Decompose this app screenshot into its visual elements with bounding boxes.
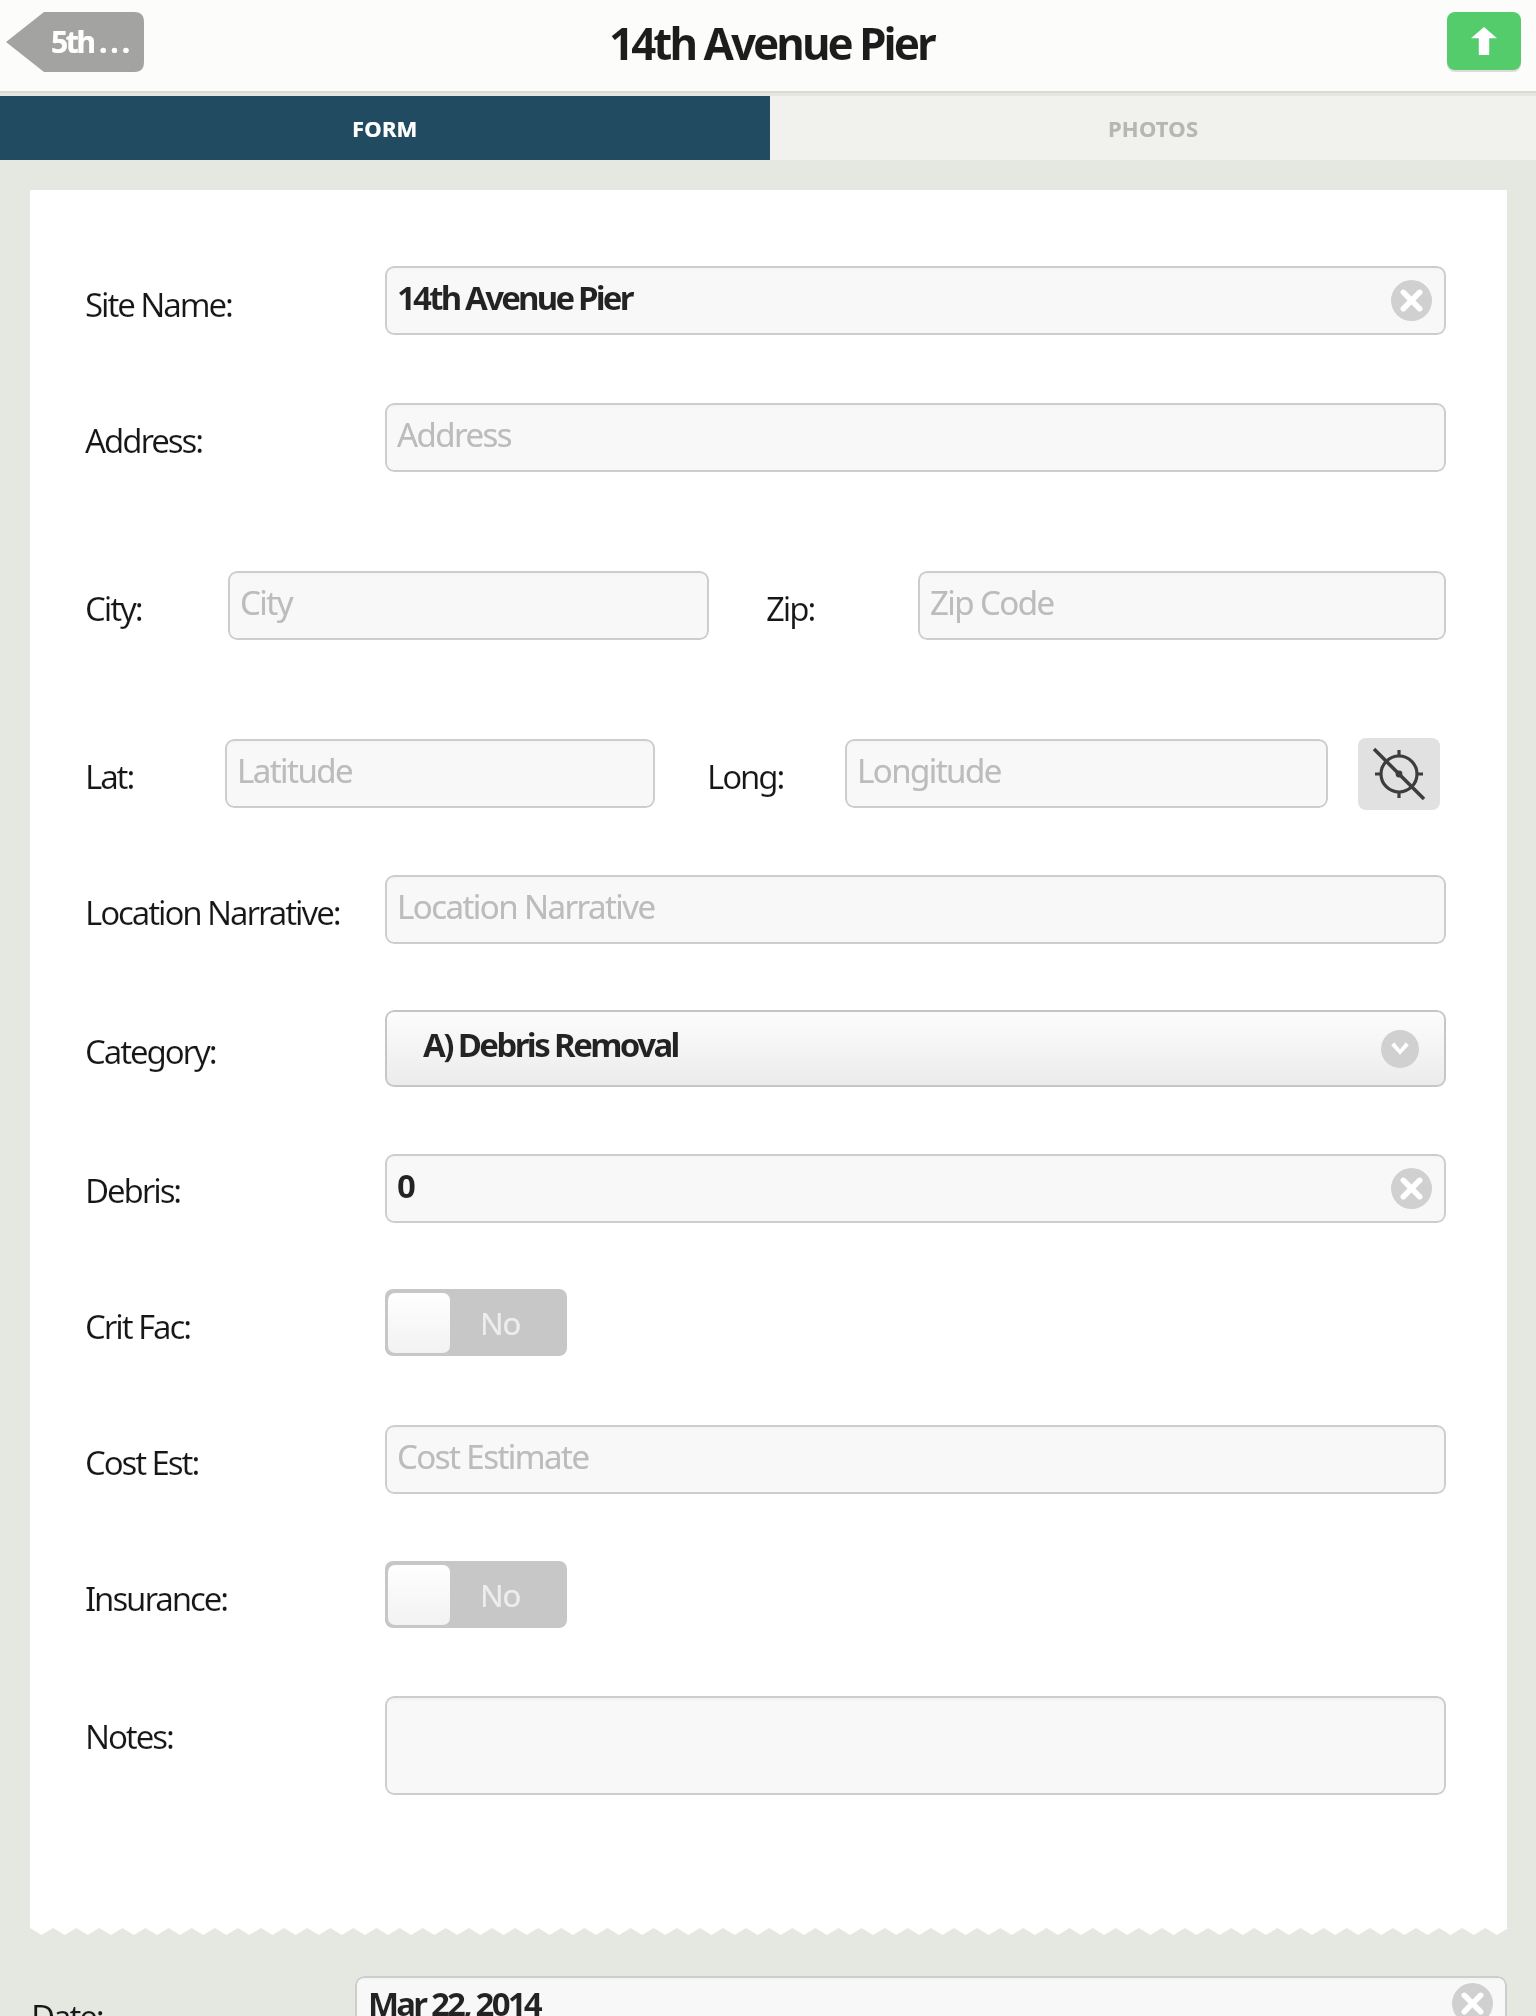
button[interactable]: Location off	[1358, 738, 1440, 810]
staticText: Insurance:	[85, 1576, 227, 1621]
staticText: Zip:	[766, 586, 815, 631]
staticText: Cost Est:	[85, 1440, 199, 1485]
staticText: 14th Avenue Pier	[397, 275, 632, 320]
button[interactable]: Upload	[1447, 12, 1521, 70]
staticText: Mar 22, 2014	[368, 1981, 540, 2016]
button[interactable]: PHOTOS	[770, 96, 1536, 160]
button[interactable]: No	[385, 1561, 567, 1628]
staticText: Crit Fac:	[85, 1304, 190, 1349]
button[interactable]: Address	[385, 403, 1446, 472]
staticText: Category:	[85, 1029, 216, 1074]
other: Open category list	[1381, 1030, 1419, 1068]
staticText: Long:	[707, 754, 784, 799]
staticText: Debris:	[85, 1168, 181, 1213]
staticText: 0	[397, 1163, 414, 1208]
staticText: PHOTOS	[1108, 113, 1199, 143]
button[interactable]: Clear	[1391, 280, 1432, 321]
staticText: City:	[85, 586, 142, 631]
staticText: City	[240, 580, 292, 625]
button[interactable]: Clear	[1452, 1983, 1493, 2016]
staticText: A) Debris Removal	[423, 1022, 678, 1067]
staticText: FORM	[352, 113, 418, 143]
staticText: No	[480, 1302, 521, 1344]
staticText: Date:	[31, 1994, 103, 2016]
button[interactable]: Longitude	[845, 739, 1328, 808]
button[interactable]: Latitude	[225, 739, 655, 808]
staticText: Notes:	[85, 1714, 173, 1759]
button[interactable]: 14th Avenue Pier	[385, 266, 1446, 335]
staticText: Site Name:	[85, 282, 232, 327]
button[interactable]: City	[228, 571, 709, 640]
button[interactable]	[385, 1696, 1446, 1795]
staticText: 5th . . .	[51, 21, 128, 62]
staticText: Longitude	[857, 748, 1001, 793]
staticText: Address	[397, 412, 512, 457]
staticText: Location Narrative	[397, 884, 655, 929]
button[interactable]: Back to 5th	[6, 12, 144, 72]
staticText: Address:	[85, 418, 202, 463]
staticText: 14th Avenue Pier	[609, 13, 934, 73]
staticText: Lat:	[85, 754, 134, 799]
button[interactable]: 0	[385, 1154, 1446, 1223]
button[interactable]: Location Narrative	[385, 875, 1446, 944]
staticText: Zip Code	[930, 580, 1054, 625]
button[interactable]: No	[385, 1289, 567, 1356]
button[interactable]: Mar 22, 2014	[355, 1976, 1507, 2016]
button[interactable]: FORM	[0, 96, 770, 160]
staticText: No	[480, 1574, 521, 1616]
staticText: Location Narrative:	[85, 890, 340, 935]
staticText: Cost Estimate	[397, 1434, 589, 1479]
button[interactable]: Cost Estimate	[385, 1425, 1446, 1494]
button[interactable]: A) Debris Removal	[385, 1010, 1446, 1087]
button[interactable]: Zip Code	[918, 571, 1446, 640]
button[interactable]: Clear	[1391, 1168, 1432, 1209]
staticText: Latitude	[237, 748, 353, 793]
